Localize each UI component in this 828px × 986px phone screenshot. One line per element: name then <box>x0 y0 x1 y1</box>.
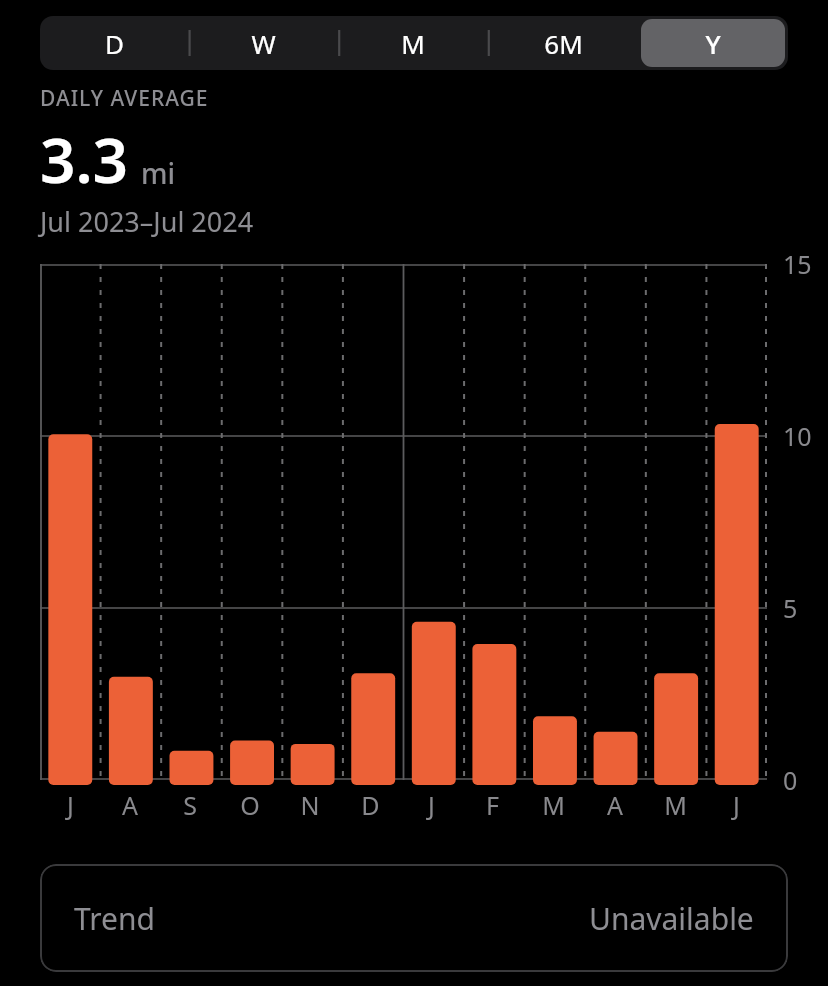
staticText: S <box>183 788 197 822</box>
staticText: J <box>733 788 740 822</box>
button[interactable]: M <box>341 19 485 67</box>
staticText: M <box>401 26 425 61</box>
button[interactable]: D <box>43 19 186 67</box>
staticText: D <box>361 788 380 822</box>
staticText: 10 <box>783 419 812 453</box>
staticText: Y <box>705 26 721 61</box>
staticText: 15 <box>783 247 812 281</box>
staticText: F <box>486 788 499 822</box>
button[interactable]: W <box>192 19 335 67</box>
button[interactable]: Y <box>641 19 785 67</box>
staticText: O <box>240 788 260 822</box>
staticText: Jul 2023–Jul 2024 <box>40 203 254 240</box>
staticText: DAILY AVERAGE <box>40 84 209 113</box>
staticText: 3.3 <box>40 117 129 201</box>
button[interactable]: Trend <box>40 864 788 972</box>
staticText: M <box>542 788 565 822</box>
staticText: N <box>300 788 320 822</box>
staticText: 6M <box>544 26 583 61</box>
button[interactable]: 6M <box>491 19 635 67</box>
staticText: M <box>664 788 687 822</box>
staticText: D <box>105 26 124 61</box>
staticText: A <box>607 788 623 822</box>
staticText: Unavailable <box>589 898 754 939</box>
staticText: W <box>251 26 276 61</box>
staticText: A <box>122 788 138 822</box>
staticText: 5 <box>783 591 798 625</box>
staticText: 0 <box>783 763 798 797</box>
staticText: Trend <box>74 898 155 939</box>
staticText: J <box>67 788 74 822</box>
staticText: J <box>428 788 435 822</box>
staticText: mi <box>141 154 176 192</box>
